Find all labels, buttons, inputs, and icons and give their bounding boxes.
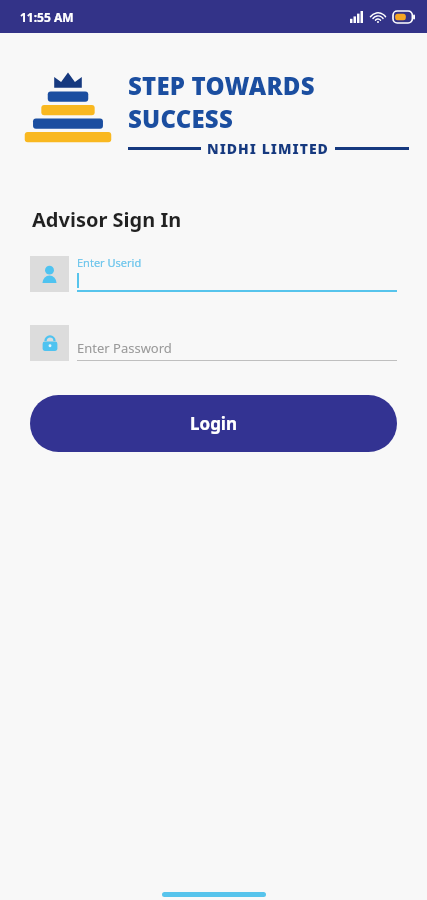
button[interactable]: Enter Userid <box>30 255 397 292</box>
staticText: Advisor Sign In <box>32 206 182 233</box>
staticText: Enter Password <box>77 339 172 357</box>
staticText: 11:55 AM <box>20 9 74 25</box>
staticText: NIDHI LIMITED <box>207 139 329 158</box>
button[interactable]: Login <box>30 395 397 452</box>
staticText: Login <box>190 412 238 435</box>
button[interactable]: Enter Password <box>30 325 397 361</box>
other: Home <box>162 892 266 897</box>
staticText: STEP TOWARDS SUCCESS <box>128 69 417 135</box>
staticText: Enter Userid <box>77 255 142 270</box>
